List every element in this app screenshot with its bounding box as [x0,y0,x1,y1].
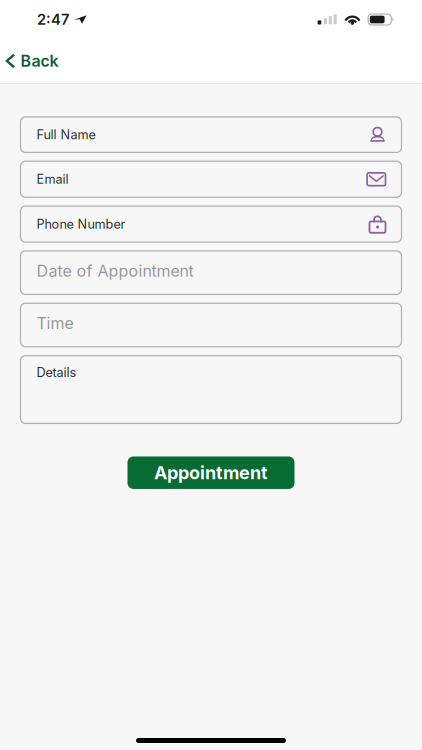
staticText: 2:47 [37,11,69,28]
staticText: Phone Number [36,216,125,232]
button[interactable]: Phone Number [20,206,401,242]
staticText: Appointment [154,462,268,484]
staticText: Email [36,172,68,187]
staticText: Details [36,365,76,380]
button[interactable]: Details [20,356,401,423]
staticText: Back [20,51,58,71]
staticText: Date of Appointment [36,261,193,281]
button[interactable]: Back [0,46,70,81]
staticText: Time [36,314,73,333]
staticText: Full Name [36,127,95,142]
button[interactable]: Date of Appointment [20,251,401,294]
button[interactable]: Appointment [127,456,294,489]
button[interactable]: Time [20,303,401,347]
button[interactable]: Email [20,161,401,197]
button[interactable]: Full Name [20,117,401,152]
